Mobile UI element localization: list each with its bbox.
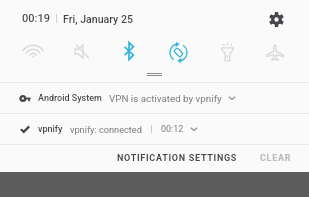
staticText: 00:12 — [161, 124, 184, 135]
staticText: vpnify — [38, 124, 63, 135]
staticText: VPN is activated by vpnify — [109, 93, 222, 104]
button[interactable]: Wi-Fi — [19, 36, 47, 64]
button[interactable]: Settings — [263, 6, 289, 32]
staticText: CLEAR — [260, 153, 292, 164]
button[interactable]: NOTIFICATION SETTINGS — [112, 148, 243, 169]
staticText: Android System — [38, 93, 102, 104]
staticText: vpnify: connected — [70, 124, 142, 135]
button[interactable]: Sound off — [67, 37, 95, 65]
staticText: NOTIFICATION SETTINGS — [117, 153, 238, 164]
staticText: 00:19 — [22, 12, 50, 25]
button[interactable]: Auto rotate — [164, 38, 192, 66]
button[interactable]: vpnify — [0, 114, 309, 144]
button[interactable]: CLEAR — [255, 148, 297, 169]
staticText: Fri, January 25 — [63, 13, 133, 25]
button[interactable]: Airplane mode — [261, 38, 289, 66]
button[interactable]: Android System — [0, 83, 309, 113]
button[interactable]: Flashlight — [213, 38, 241, 66]
button[interactable]: Bluetooth — [115, 37, 143, 65]
